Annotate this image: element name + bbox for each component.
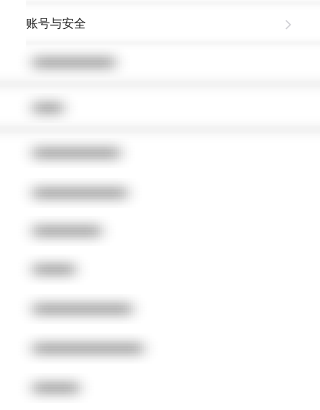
button[interactable] <box>0 89 320 127</box>
button[interactable] <box>0 43 320 81</box>
button[interactable] <box>0 134 320 172</box>
button[interactable] <box>0 250 320 288</box>
button[interactable]: 账号与安全 <box>0 3 320 43</box>
button[interactable] <box>0 212 320 250</box>
button[interactable] <box>0 290 320 328</box>
staticText: 账号与安全 <box>26 16 86 31</box>
button[interactable] <box>0 329 320 367</box>
button[interactable] <box>0 174 320 212</box>
button[interactable] <box>0 369 320 407</box>
